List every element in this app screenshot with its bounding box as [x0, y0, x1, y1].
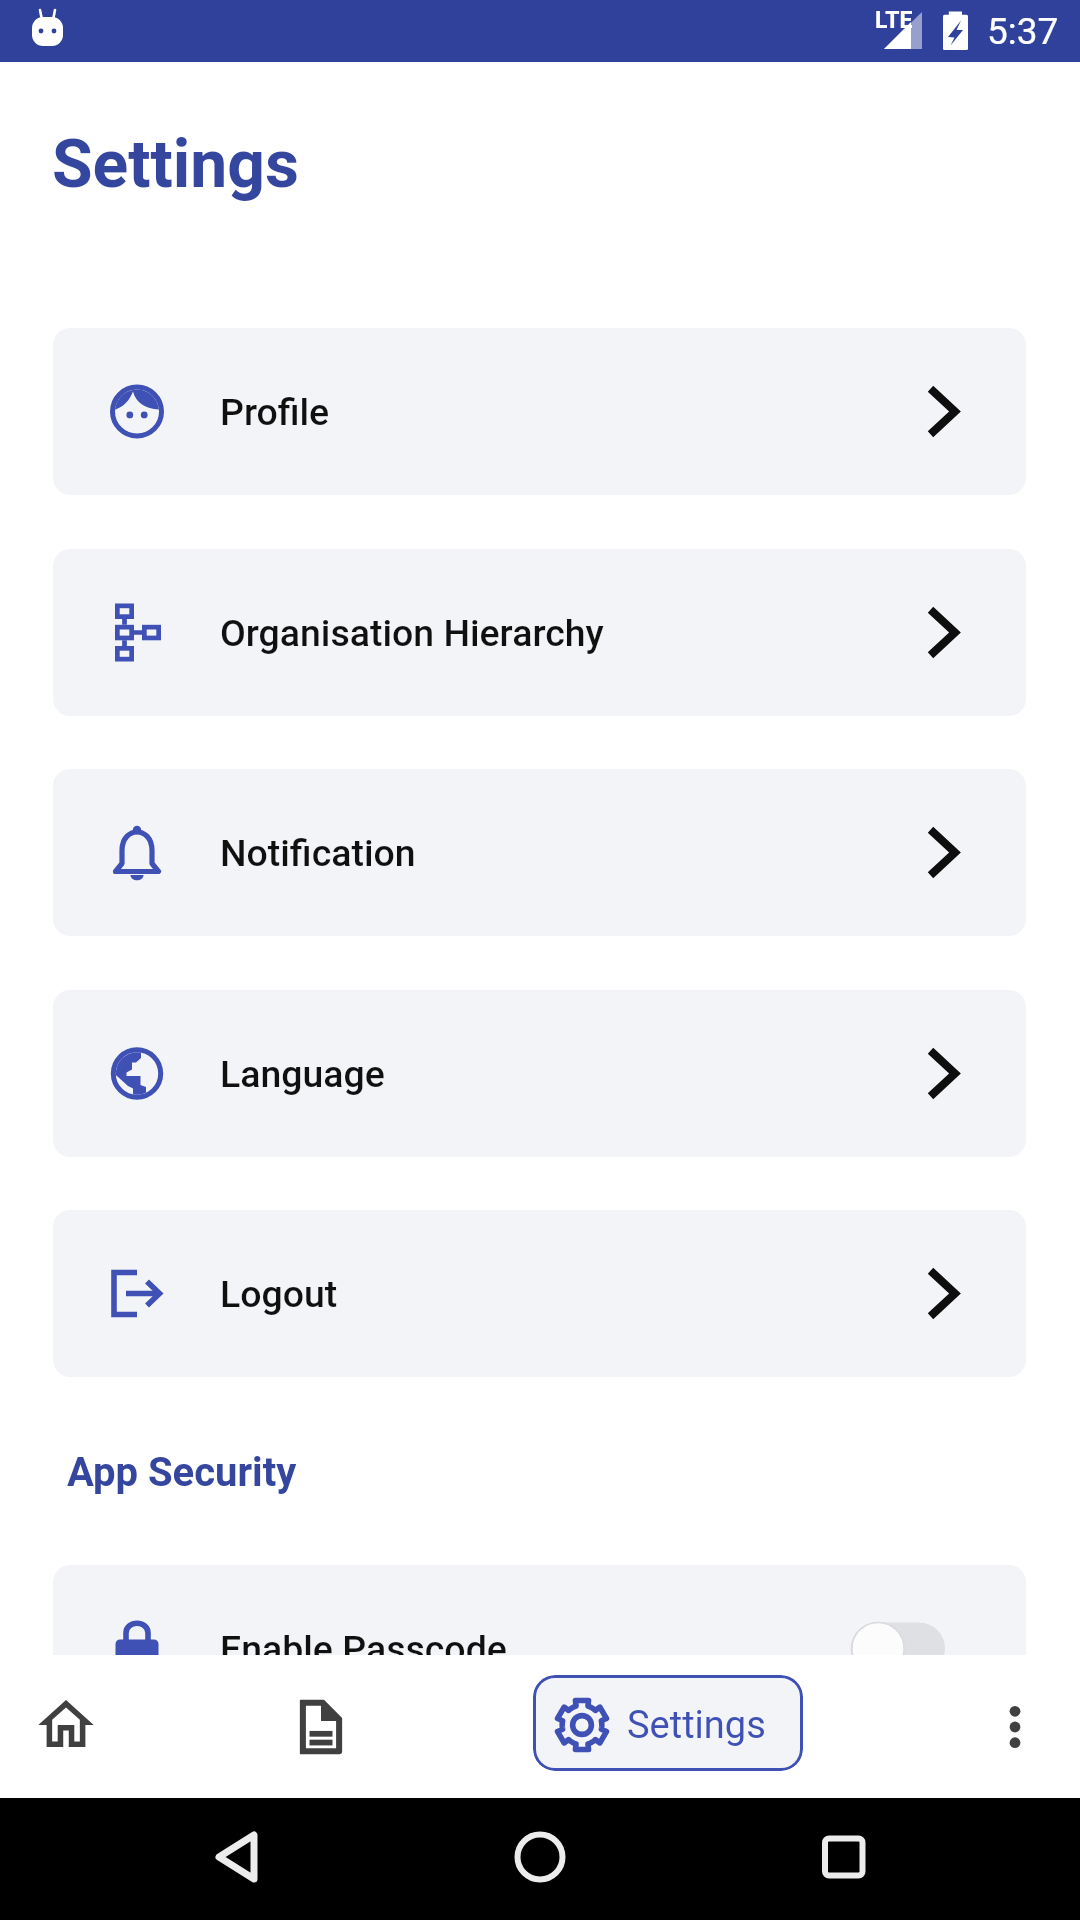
button[interactable]: More options: [954, 1655, 1074, 1798]
staticText: Logout: [220, 1272, 338, 1316]
button[interactable]: Settings: [533, 1675, 803, 1771]
staticText: Profile: [220, 390, 330, 434]
button[interactable]: Notification: [53, 769, 1026, 936]
staticText: Enable Passcode: [220, 1627, 507, 1655]
button[interactable]: Profile: [53, 328, 1026, 495]
staticText: Settings: [52, 126, 299, 203]
button[interactable]: Home: [6, 1655, 126, 1798]
staticText: 5:37: [987, 10, 1059, 53]
button[interactable]: Organisation Hierarchy: [53, 549, 1026, 716]
button[interactable]: Logout: [53, 1210, 1026, 1377]
staticText: Language: [220, 1052, 385, 1096]
button[interactable]: Documents: [261, 1655, 381, 1798]
staticText: App Security: [67, 1449, 297, 1496]
staticText: Organisation Hierarchy: [220, 611, 604, 655]
staticText: LTE: [875, 7, 913, 34]
staticText: Settings: [627, 1703, 766, 1748]
button[interactable]: Language: [53, 990, 1026, 1157]
button[interactable]: Enable Passcode: [53, 1565, 1026, 1655]
staticText: Notification: [220, 831, 416, 875]
